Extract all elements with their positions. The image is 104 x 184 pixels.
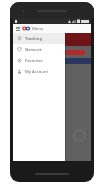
button[interactable]: Open navigation drawer bbox=[13, 24, 22, 33]
button[interactable] bbox=[19, 50, 85, 55]
staticText: Network bbox=[25, 47, 42, 53]
button[interactable]: Add bbox=[74, 130, 85, 141]
staticText: My Account bbox=[25, 69, 48, 75]
staticText: Favorites bbox=[25, 58, 43, 64]
button[interactable]: Favorites bbox=[13, 55, 65, 66]
staticText: Menu bbox=[32, 26, 44, 32]
button[interactable]: My Account bbox=[13, 66, 65, 77]
button[interactable]: Tracking bbox=[13, 33, 65, 44]
staticText: Tracking bbox=[25, 36, 42, 42]
button[interactable]: Network bbox=[13, 44, 65, 55]
